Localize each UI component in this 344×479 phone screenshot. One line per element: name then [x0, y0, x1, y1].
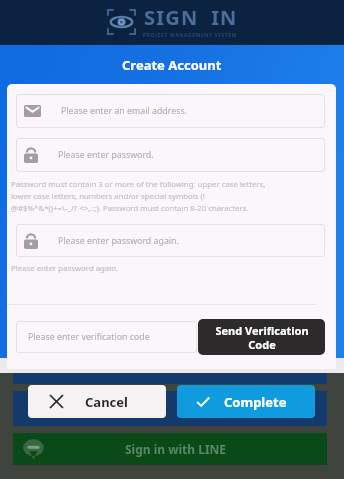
button[interactable]: LINE: [13, 433, 327, 465]
staticText: Sign in with LINE: [125, 441, 227, 457]
staticText: Please enter verification code: [28, 331, 150, 343]
other: LINE: [22, 438, 45, 461]
button[interactable]: Complete: [177, 385, 315, 418]
button[interactable]: Please enter password again.: [16, 224, 325, 257]
button[interactable]: Cancel: [28, 385, 166, 418]
staticText: Please enter password again.: [11, 263, 119, 274]
staticText: Please enter an email address.: [61, 105, 187, 117]
staticText: Cancel: [85, 393, 128, 411]
staticText: Create Account: [122, 56, 222, 74]
button[interactable]: Please enter password.: [16, 138, 325, 172]
staticText: SIGN IN: [144, 4, 238, 31]
staticText: Please enter password again.: [58, 235, 179, 247]
staticText: Send Verification Code: [215, 323, 309, 352]
other: Cancel: [50, 395, 63, 408]
staticText: PROJECT MANAGEMENT SYSTEM: [143, 32, 238, 39]
button[interactable]: Send Verification Code: [198, 319, 325, 355]
staticText: Complete: [224, 393, 287, 411]
staticText: Please enter password.: [58, 149, 154, 161]
button[interactable]: Please enter verification code: [16, 321, 197, 353]
staticText: Password must contain 3 or more of the f…: [11, 179, 266, 214]
button[interactable]: Please enter an email address.: [16, 94, 325, 128]
